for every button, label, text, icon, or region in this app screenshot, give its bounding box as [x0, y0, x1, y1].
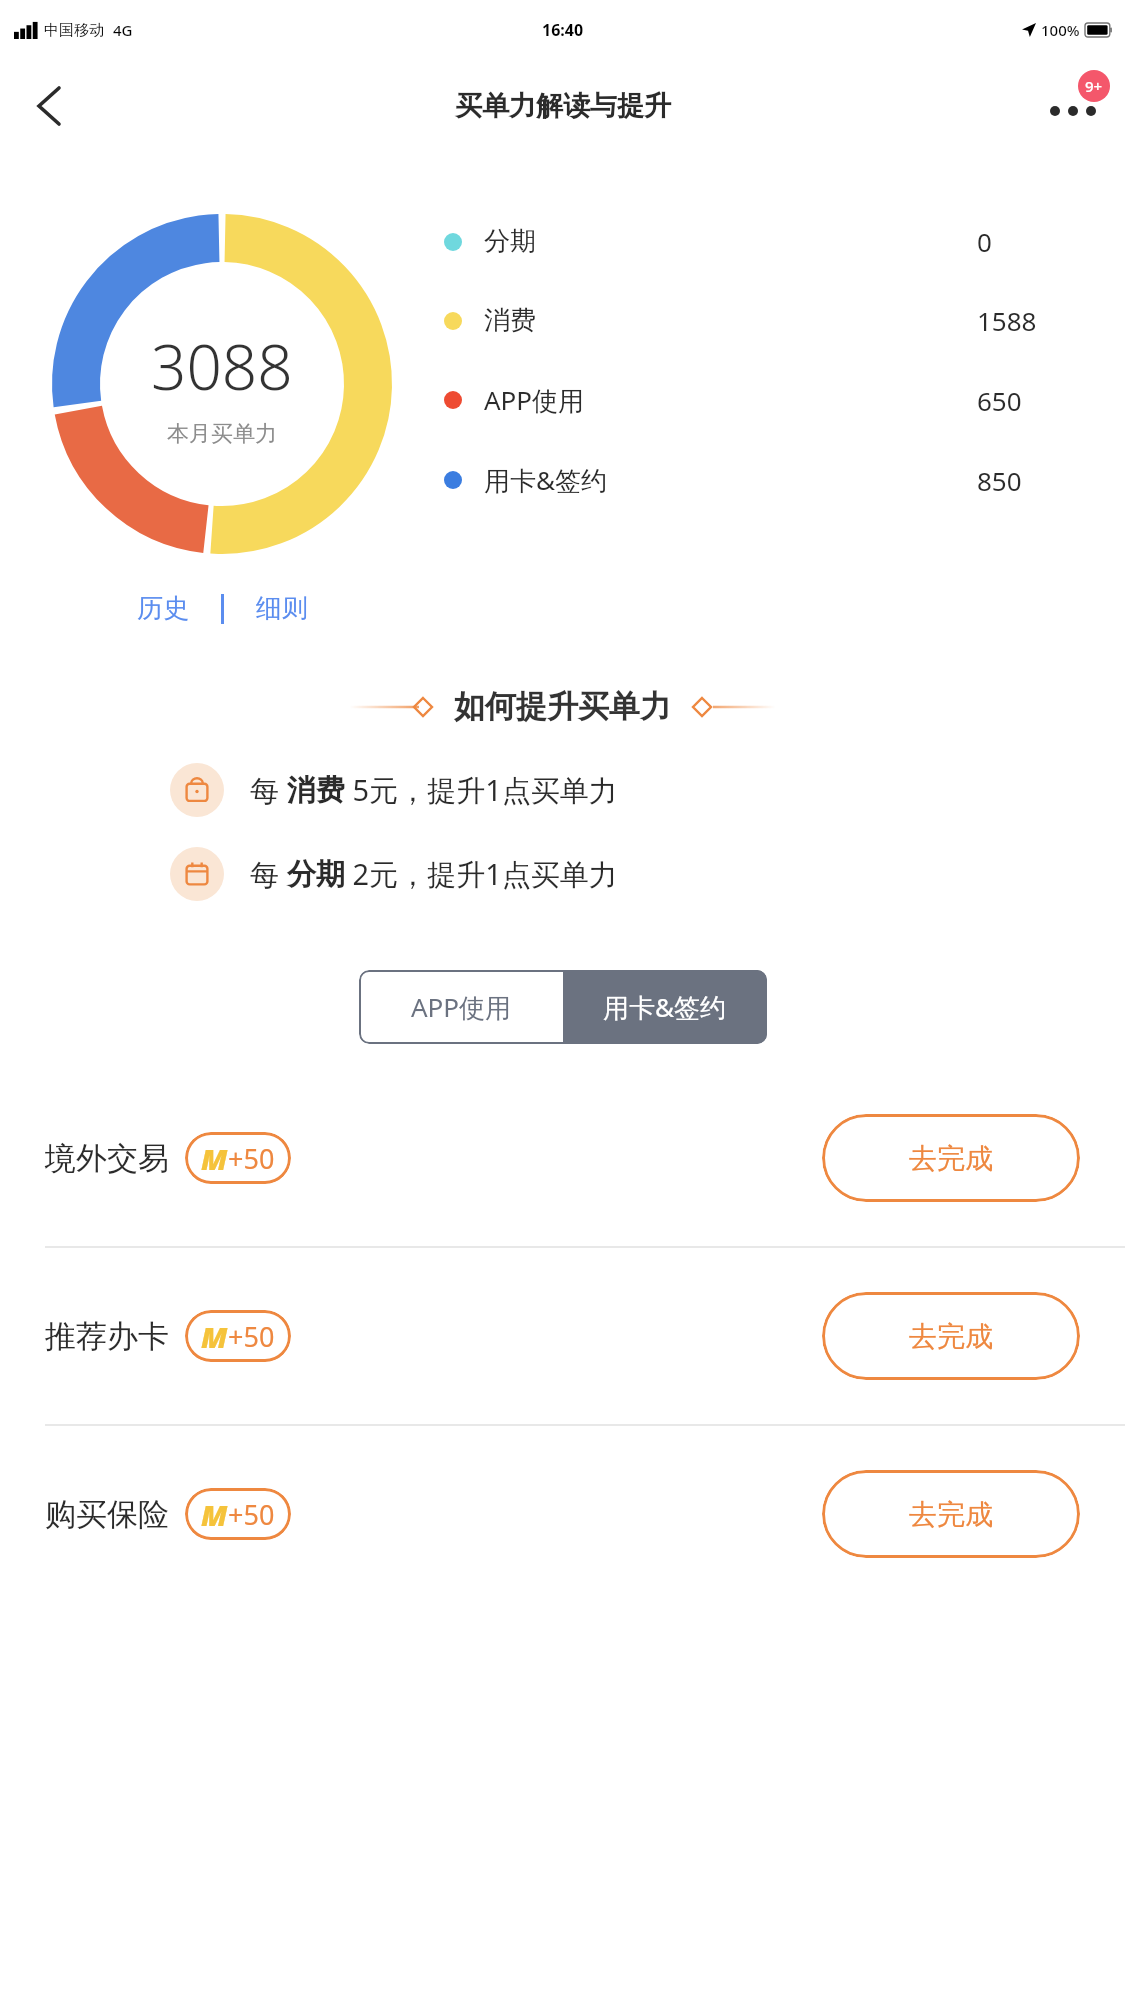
staticText: 4G [113, 20, 133, 40]
staticText: 0 [977, 224, 992, 259]
staticText: 分期 [484, 225, 536, 258]
staticText: 消费 [484, 304, 536, 337]
staticText: 650 [977, 383, 1022, 418]
staticText: 9+ [1085, 76, 1103, 96]
staticText: APP使用 [411, 989, 512, 1025]
staticText: 2元，提升1点买单力 [345, 854, 618, 894]
staticText: 中国移动 [44, 21, 104, 40]
staticText: 用卡&签约 [603, 989, 727, 1025]
button[interactable]: 境外交易 [0, 1070, 1125, 1246]
staticText: 100% [1041, 20, 1080, 40]
staticText: 境外交易 [45, 1139, 169, 1178]
staticText: 如何提升买单力 [454, 687, 671, 726]
button[interactable]: 历史 [127, 588, 199, 629]
staticText: 1588 [977, 303, 1037, 338]
staticText: 用卡&签约 [484, 462, 608, 498]
button[interactable]: 细则 [246, 588, 318, 629]
staticText: +50 [228, 1140, 275, 1177]
button[interactable]: 推荐办卡 [0, 1248, 1125, 1424]
button[interactable]: 购买保险 [0, 1426, 1125, 1602]
staticText: 每 [250, 770, 287, 810]
staticText: 消费 [287, 772, 345, 809]
button[interactable]: 去完成 [822, 1114, 1080, 1202]
staticText: APP使用 [484, 382, 585, 418]
staticText: 去完成 [909, 1319, 993, 1354]
staticText: M [201, 1317, 228, 1356]
staticText: 买单力解读与提升 [455, 89, 671, 123]
staticText: M [201, 1139, 228, 1178]
button[interactable]: 返回 [18, 75, 80, 137]
staticText: M [201, 1495, 228, 1534]
staticText: 去完成 [909, 1497, 993, 1532]
button[interactable]: 去完成 [822, 1292, 1080, 1380]
staticText: 本月买单力 [167, 420, 277, 448]
button[interactable]: 去完成 [822, 1470, 1080, 1558]
staticText: 5元，提升1点买单力 [345, 770, 618, 810]
staticText: 16:40 [542, 19, 584, 41]
button[interactable]: APP使用 [359, 970, 563, 1044]
button[interactable]: 用卡&签约 [563, 970, 767, 1044]
button[interactable]: 更多，9条未读 [1035, 68, 1111, 144]
staticText: 历史 [137, 592, 189, 625]
staticText: 分期 [287, 856, 345, 893]
staticText: 细则 [256, 592, 308, 625]
staticText: 3088 [151, 324, 293, 408]
staticText: 去完成 [909, 1141, 993, 1176]
staticText: 购买保险 [45, 1495, 169, 1534]
staticText: 850 [977, 463, 1022, 498]
staticText: +50 [228, 1496, 275, 1533]
staticText: +50 [228, 1318, 275, 1355]
staticText: 推荐办卡 [45, 1317, 169, 1356]
staticText: 每 [250, 854, 287, 894]
